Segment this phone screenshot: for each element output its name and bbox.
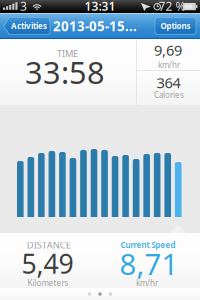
staticText: 5,49	[21, 246, 73, 281]
staticText: Calories	[154, 90, 184, 100]
staticText: DISTANCE	[27, 239, 71, 251]
staticText: 8,71	[119, 244, 178, 283]
staticText: 3	[20, 0, 27, 14]
staticText: km/hr	[158, 60, 180, 70]
button[interactable]: Options	[155, 17, 196, 34]
staticText: Kilometers	[27, 278, 68, 288]
staticText: Current Speed	[120, 240, 175, 250]
staticText: TIME	[57, 47, 78, 60]
staticText: 33:58	[25, 52, 105, 92]
staticText: 2013-05-15...	[53, 17, 137, 35]
staticText: 9,69	[154, 40, 182, 60]
staticText: Activities	[11, 21, 47, 31]
staticText: Options	[160, 21, 190, 31]
button[interactable]: Activities	[3, 17, 50, 34]
staticText: km/hr	[136, 278, 158, 288]
staticText: 72 %	[158, 0, 185, 14]
staticText: 13:31	[84, 0, 115, 14]
staticText: 364	[156, 73, 180, 92]
